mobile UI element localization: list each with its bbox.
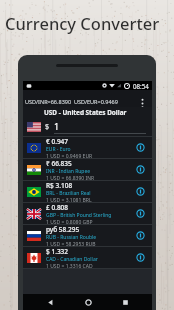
staticText: Currency Converter <box>5 12 160 34</box>
button[interactable]: More options <box>139 90 152 107</box>
button[interactable]: Info <box>132 225 149 246</box>
staticText: 1 <box>54 120 60 132</box>
staticText: £ 0.808 <box>46 203 69 212</box>
staticText: RUB - Russian Rouble <box>46 234 97 241</box>
button[interactable]: ₹ 66.835 <box>23 159 152 180</box>
staticText: руб 58.295 <box>46 225 80 234</box>
button[interactable]: Info <box>132 181 149 202</box>
staticText: € 0.947 <box>46 137 69 146</box>
staticText: GBP - British Pound Sterling <box>46 212 112 219</box>
staticText: 08:54 <box>133 82 149 90</box>
staticText: EUR - Euro <box>46 146 71 153</box>
staticText: 1 USD = 1.3316 CAD <box>46 263 93 268</box>
button[interactable]: R$ 3.108 <box>23 181 152 202</box>
staticText: 1 USD = 0.9469 EUR <box>46 153 93 158</box>
button[interactable]: Back <box>39 294 61 310</box>
staticText: $ <box>45 122 50 132</box>
staticText: BRL - Brazilian Real <box>46 190 91 197</box>
staticText: INR - Indian Rupee <box>46 168 91 175</box>
staticText: USD/INR=66.8390 USD/EUR=0.9469 USD <box>25 98 131 105</box>
staticText: 1 USD = 58.2953 RUB <box>46 241 96 246</box>
button[interactable]: Info <box>132 137 149 158</box>
button[interactable]: Info <box>132 247 149 268</box>
staticText: 1 USD = 3.1081 BRL <box>46 197 92 202</box>
button[interactable]: $ <box>23 118 152 136</box>
button[interactable]: Info <box>132 203 149 224</box>
staticText: USD - United States Dollar <box>44 108 127 117</box>
button[interactable]: £ 0.808 <box>23 203 152 224</box>
staticText: ₹ 66.835 <box>46 159 72 168</box>
staticText: 1 USD = 66.8390 INR <box>46 175 95 180</box>
staticText: R$ 3.108 <box>46 181 73 190</box>
staticText: $ 1.332 <box>46 247 69 256</box>
staticText: CAD - Canadian Dollar <box>46 256 98 263</box>
staticText: 1 USD = 0.8080 GBP <box>46 219 93 224</box>
button[interactable]: $ 1.332 <box>23 247 152 268</box>
button[interactable]: Recents <box>114 294 136 310</box>
button[interactable]: Home <box>77 294 99 310</box>
button[interactable]: € 0.947 <box>23 137 152 158</box>
button[interactable]: руб 58.295 <box>23 225 152 246</box>
button[interactable]: Info <box>132 159 149 180</box>
